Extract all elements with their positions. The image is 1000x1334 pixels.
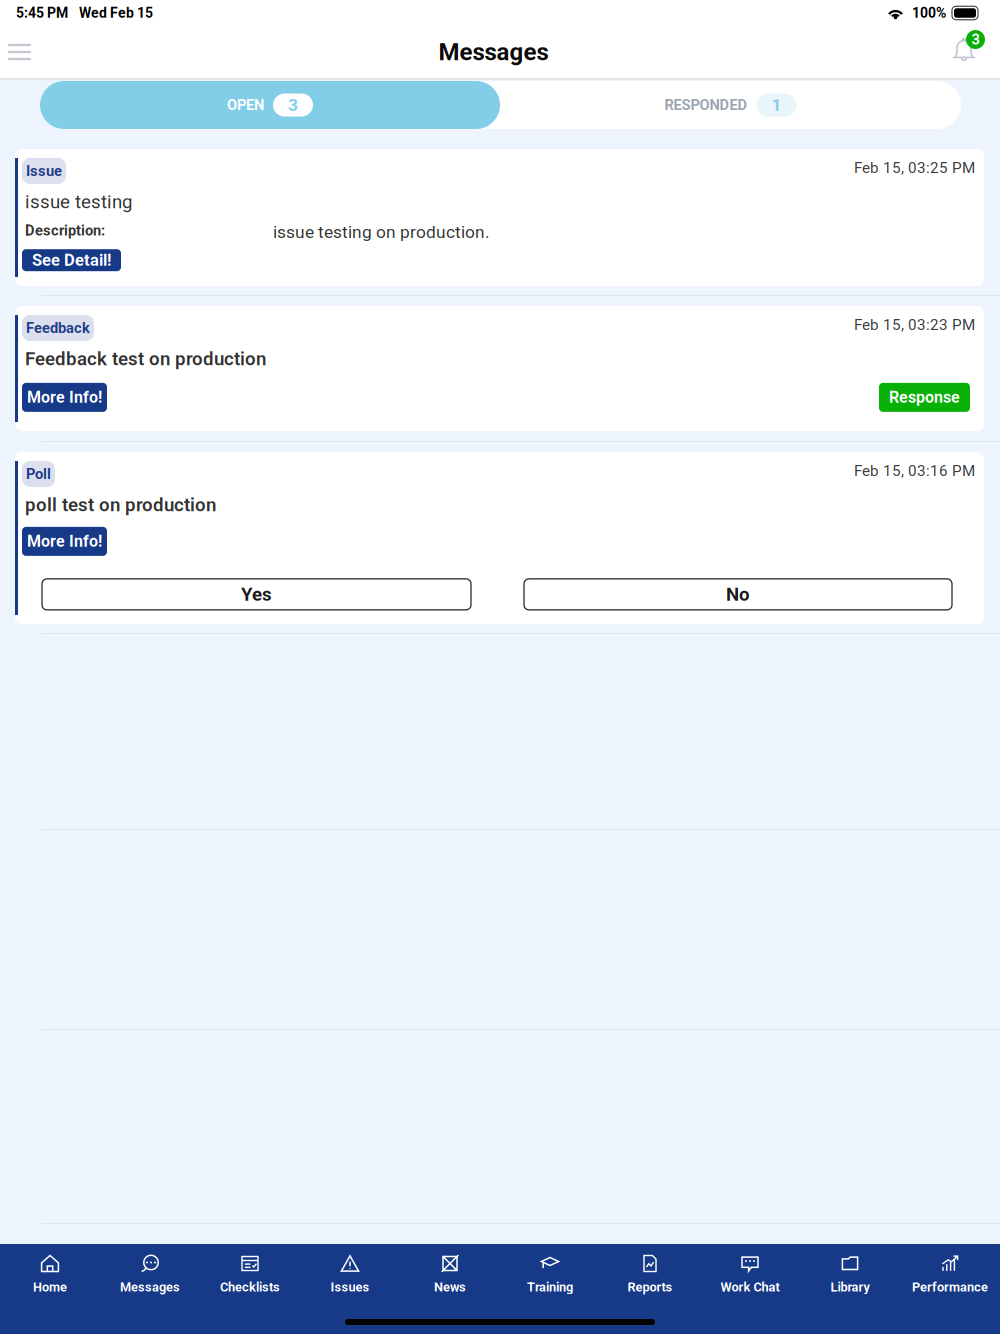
staticText: More Info! [27, 532, 102, 551]
staticText: 5:45 PM [16, 5, 68, 21]
staticText: Feedback test on production [25, 348, 266, 370]
staticText: Response [889, 388, 960, 407]
button[interactable]: Home [0, 1248, 100, 1300]
button[interactable]: Library [800, 1248, 900, 1300]
button[interactable]: RESPONDED [500, 81, 961, 129]
staticText: Description: [25, 222, 105, 239]
button[interactable]: Response [879, 383, 970, 412]
staticText: Feedback [26, 319, 90, 337]
staticText: 3 [288, 95, 298, 115]
button[interactable]: No [524, 579, 952, 610]
staticText: Performance [912, 1279, 988, 1294]
staticText: Wed Feb 15 [79, 5, 153, 21]
staticText: issue testing [25, 191, 132, 213]
button[interactable]: See Detail! [22, 249, 121, 271]
staticText: Feb 15, 03:16 PM [854, 462, 975, 480]
button[interactable]: OPEN [40, 81, 500, 129]
staticText: Feb 15, 03:23 PM [854, 316, 975, 334]
staticText: Issues [330, 1279, 369, 1294]
button[interactable]: Issues [300, 1248, 400, 1300]
button[interactable]: Notifications [948, 26, 990, 78]
button[interactable]: Performance [900, 1248, 1000, 1300]
staticText: More Info! [27, 388, 102, 407]
button[interactable]: Yes [42, 579, 471, 610]
button[interactable]: Messages [100, 1248, 200, 1300]
staticText: Home [33, 1279, 67, 1294]
button[interactable]: Work Chat [700, 1248, 800, 1300]
staticText: Feb 15, 03:25 PM [854, 159, 975, 177]
staticText: Training [527, 1279, 573, 1294]
staticText: Reports [627, 1279, 672, 1294]
staticText: issue testing on production. [273, 222, 490, 242]
staticText: 1 [771, 95, 781, 115]
staticText: Poll [26, 465, 51, 483]
staticText: poll test on production [25, 494, 216, 516]
staticText: Checklists [220, 1279, 280, 1294]
staticText: News [434, 1279, 466, 1294]
staticText: OPEN [227, 96, 264, 114]
button[interactable]: Menu [0, 26, 39, 78]
button[interactable]: More Info! [22, 383, 107, 412]
staticText: Messages [438, 38, 548, 66]
staticText: RESPONDED [664, 96, 747, 114]
staticText: See Detail! [32, 250, 111, 270]
button[interactable]: More Info! [22, 527, 107, 556]
button[interactable]: News [400, 1248, 500, 1300]
staticText: Issue [26, 162, 62, 180]
staticText: 3 [971, 31, 979, 48]
staticText: Library [830, 1279, 869, 1294]
staticText: Messages [120, 1279, 180, 1294]
button[interactable]: Training [500, 1248, 600, 1300]
staticText: Yes [241, 583, 272, 605]
button[interactable]: Reports [600, 1248, 700, 1300]
button[interactable]: Checklists [200, 1248, 300, 1300]
staticText: No [726, 583, 750, 605]
staticText: Work Chat [720, 1279, 779, 1294]
staticText: 100% [912, 5, 946, 21]
